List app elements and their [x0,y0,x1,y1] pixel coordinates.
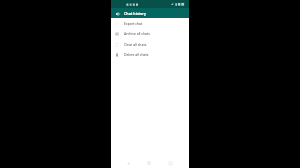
staticText: Chat history [124,11,146,16]
staticText: Delete all chats [124,52,149,57]
button[interactable]: Delete all chats [111,49,189,59]
button[interactable]: Clear all chats [111,39,189,49]
button[interactable]: Archive all chats [111,28,189,38]
staticText: Export chat [124,21,143,26]
staticText: Archive all chats [124,31,150,36]
button[interactable]: Back [124,159,132,167]
staticText: Clear all chats [124,42,147,47]
button[interactable]: Recents [166,159,174,167]
button[interactable]: Export chat [111,18,189,28]
button[interactable]: Back [113,9,122,18]
button[interactable]: Home [145,159,153,167]
